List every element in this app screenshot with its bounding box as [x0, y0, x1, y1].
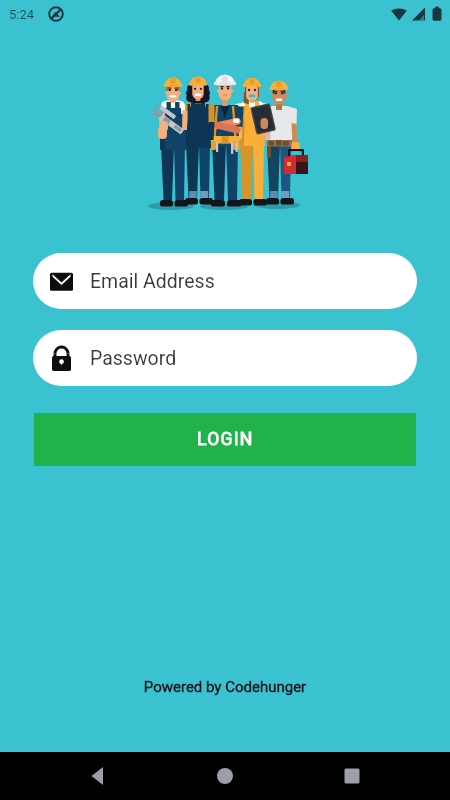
- staticText: Password: [90, 347, 177, 370]
- button[interactable]: Home: [205, 756, 245, 796]
- staticText: LOGIN: [197, 429, 254, 450]
- staticText: 5:24: [9, 7, 35, 22]
- staticText: Powered by Codehunger: [0, 678, 450, 696]
- staticText: Email Address: [90, 270, 215, 293]
- button[interactable]: Email Address: [33, 253, 417, 309]
- button[interactable]: Password: [33, 330, 417, 386]
- button[interactable]: Back: [78, 756, 118, 796]
- button[interactable]: Recent apps: [332, 756, 372, 796]
- button[interactable]: LOGIN: [34, 413, 416, 466]
